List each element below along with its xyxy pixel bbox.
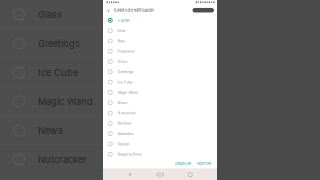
staticText: Crystal [117, 18, 129, 22]
staticText: Ice Cube [38, 67, 78, 78]
button[interactable]: Ice Cube [0, 58, 103, 87]
staticText: Splendour [117, 132, 133, 136]
staticText: Greetings [38, 38, 80, 49]
button[interactable]: Rainbow [103, 118, 217, 128]
button[interactable]: Beat [103, 36, 217, 46]
button[interactable]: Squirrel [103, 139, 217, 149]
button[interactable]: Nutcracker [103, 108, 217, 118]
staticText: Glass [38, 9, 62, 20]
button[interactable]: Back [128, 173, 132, 177]
staticText: Sonido de notificación [113, 8, 153, 13]
staticText: News [117, 101, 127, 105]
button[interactable]: Flapanese [103, 46, 217, 56]
button[interactable]: Home [157, 173, 164, 176]
button[interactable]: Echo [103, 25, 217, 36]
staticText: Magic Wand [117, 90, 137, 95]
staticText: ‹ [107, 7, 109, 14]
button[interactable]: Greetings [0, 29, 103, 58]
button[interactable]: Stepping Stone [103, 149, 217, 159]
button[interactable]: Recent apps [189, 173, 192, 176]
staticText: Ice Cube [117, 80, 132, 84]
button[interactable]: Splendour [103, 128, 217, 139]
button[interactable]: Magic Wand [103, 87, 217, 98]
staticText: Rainbow [117, 121, 131, 125]
staticText: Stepping Stone [117, 152, 141, 156]
staticText: Nutcracker [38, 154, 87, 165]
button[interactable]: ACEPTAR [197, 162, 211, 166]
button[interactable]: News [0, 116, 103, 145]
button[interactable]: Greetings [103, 67, 217, 77]
staticText: Magic Wand [38, 96, 93, 107]
button[interactable]: Crystal [103, 15, 217, 25]
button[interactable]: Glass [103, 56, 217, 67]
button[interactable]: News [103, 98, 217, 108]
button[interactable]: More options [192, 6, 214, 14]
button[interactable]: Ice Cube [103, 77, 217, 87]
button[interactable]: CANCELAR [175, 162, 191, 166]
staticText: Glass [117, 59, 127, 64]
staticText: Squirrel [117, 142, 129, 146]
staticText: Greetings [117, 70, 133, 74]
staticText: News [38, 125, 63, 136]
staticText: CANCELAR [175, 162, 191, 166]
staticText: Beat [117, 39, 124, 43]
button[interactable]: Magic Wand [0, 87, 103, 116]
staticText: Echo [117, 29, 125, 33]
staticText: Nutcracker [117, 111, 135, 115]
button[interactable]: Nutcracker [0, 145, 103, 174]
staticText: ACEPTAR [197, 162, 211, 166]
button[interactable]: Glass [0, 0, 103, 29]
staticText: Flapanese [117, 49, 134, 53]
button[interactable]: Back [103, 6, 113, 15]
